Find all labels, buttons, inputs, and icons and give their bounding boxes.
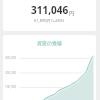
button[interactable]: 311,046 <box>3 0 96 31</box>
staticText: 61,895円 (+24%) <box>34 18 65 23</box>
staticText: 200,000 <box>5 71 17 75</box>
staticText: 資産の推移 <box>3 40 96 46</box>
staticText: 円 <box>69 10 74 16</box>
staticText: 311,046 <box>31 3 69 17</box>
staticText: 300,000 <box>5 56 17 60</box>
button[interactable]: 資産の推移 <box>3 35 96 100</box>
staticText: 100,000 <box>5 85 17 89</box>
